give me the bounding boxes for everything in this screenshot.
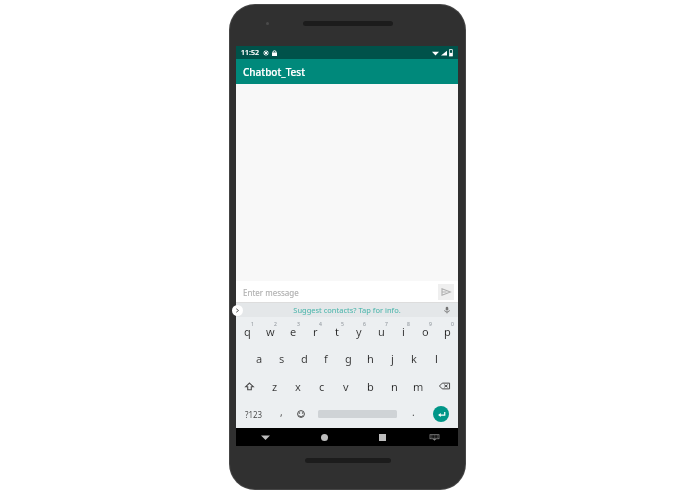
staticText: . xyxy=(412,405,415,419)
staticText: o xyxy=(422,324,429,339)
button[interactable]: 6 xyxy=(348,317,370,344)
button[interactable]: Enter message xyxy=(243,287,299,298)
staticText: 4 xyxy=(319,321,322,328)
button[interactable]: Emoji xyxy=(291,400,311,428)
button[interactable]: x xyxy=(286,372,310,400)
button[interactable]: d xyxy=(293,344,315,372)
button[interactable]: 4 xyxy=(304,317,326,344)
staticText: t xyxy=(335,324,339,339)
staticText: 8 xyxy=(407,321,410,328)
staticText: ?123 xyxy=(245,409,263,420)
button[interactable]: Home xyxy=(295,428,353,446)
button[interactable]: l xyxy=(425,344,447,372)
button[interactable]: Back xyxy=(236,428,295,446)
staticText: l xyxy=(435,351,438,366)
staticText: s xyxy=(279,351,285,366)
button[interactable]: 7 xyxy=(370,317,392,344)
button[interactable]: Shift xyxy=(236,372,263,400)
staticText: z xyxy=(272,379,278,394)
button[interactable]: ?123 xyxy=(236,400,271,428)
staticText: f xyxy=(324,351,328,366)
staticText: 0 xyxy=(451,321,454,328)
button[interactable]: a xyxy=(248,344,271,372)
staticText: 5 xyxy=(341,321,344,328)
button[interactable]: 2 xyxy=(259,317,282,344)
staticText: w xyxy=(266,324,275,339)
button[interactable]: , xyxy=(271,400,291,428)
staticText: u xyxy=(378,324,385,339)
staticText: Suggest contacts? Tap for info. xyxy=(293,305,401,315)
staticText: v xyxy=(343,379,349,394)
button[interactable]: Expand suggestions xyxy=(236,303,458,317)
button[interactable]: g xyxy=(337,344,359,372)
staticText: m xyxy=(413,379,424,394)
button[interactable]: s xyxy=(271,344,293,372)
button[interactable]: Voice input xyxy=(442,305,452,315)
button[interactable]: j xyxy=(381,344,403,372)
staticText: y xyxy=(356,324,362,339)
staticText: n xyxy=(391,379,398,394)
button[interactable]: b xyxy=(358,372,382,400)
button[interactable]: Enter xyxy=(423,400,458,428)
button[interactable]: Space xyxy=(311,400,403,428)
staticText: c xyxy=(319,379,325,394)
button[interactable]: c xyxy=(310,372,334,400)
button[interactable]: 1 xyxy=(236,317,259,344)
staticText: Chatbot_Test xyxy=(243,65,305,79)
staticText: , xyxy=(280,405,283,419)
staticText: 1 xyxy=(251,321,254,328)
button[interactable]: Expand suggestions xyxy=(232,305,243,316)
button[interactable]: m xyxy=(406,372,430,400)
staticText: 11:52 xyxy=(241,48,259,58)
button[interactable]: 3 xyxy=(282,317,304,344)
staticText: j xyxy=(391,351,394,366)
staticText: 7 xyxy=(385,321,388,328)
staticText: i xyxy=(402,324,405,339)
staticText: g xyxy=(345,351,352,366)
staticText: 3 xyxy=(297,321,300,328)
button[interactable]: Recents xyxy=(353,428,411,446)
staticText: r xyxy=(313,324,318,339)
button[interactable]: n xyxy=(382,372,406,400)
button[interactable]: . xyxy=(403,400,423,428)
button[interactable]: Switch keyboard xyxy=(411,428,458,446)
button[interactable]: 0 xyxy=(436,317,458,344)
staticText: 2 xyxy=(274,321,277,328)
staticText: x xyxy=(295,379,301,394)
button[interactable]: h xyxy=(359,344,381,372)
button[interactable]: 5 xyxy=(326,317,348,344)
button[interactable]: 8 xyxy=(392,317,414,344)
staticText: a xyxy=(256,351,263,366)
staticText: 9 xyxy=(429,321,432,328)
staticText: q xyxy=(244,324,251,339)
button[interactable]: z xyxy=(263,372,286,400)
button[interactable]: Send xyxy=(438,284,454,300)
button[interactable]: Chatbot_Test xyxy=(236,59,458,84)
button[interactable]: v xyxy=(334,372,358,400)
button[interactable]: k xyxy=(403,344,425,372)
staticText: d xyxy=(301,351,308,366)
button[interactable]: f xyxy=(315,344,337,372)
button[interactable]: 9 xyxy=(414,317,436,344)
staticText: p xyxy=(444,324,451,339)
staticText: 6 xyxy=(363,321,366,328)
staticText: h xyxy=(367,351,374,366)
button[interactable]: Backspace xyxy=(430,372,458,400)
staticText: e xyxy=(290,324,297,339)
staticText: k xyxy=(411,351,417,366)
staticText: b xyxy=(367,379,374,394)
